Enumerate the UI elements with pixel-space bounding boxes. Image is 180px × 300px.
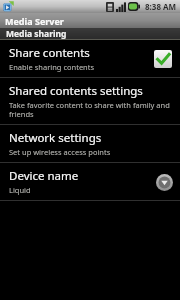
button[interactable]: Share contents toggle — [152, 48, 174, 70]
staticText: Media Server — [5, 15, 64, 27]
button[interactable]: Change device name — [154, 172, 174, 192]
button[interactable]: Share contents — [0, 40, 180, 77]
staticText: Shared contents settings — [9, 83, 143, 99]
staticText: Network settings — [9, 130, 102, 146]
staticText: Liquid — [9, 185, 31, 195]
staticText: Set up wireless access points — [9, 147, 111, 157]
staticText: Take favorite content to share with fami… — [9, 100, 174, 119]
button[interactable]: Shared contents settings — [0, 78, 180, 124]
staticText: Share contents — [9, 45, 90, 61]
staticText: Enable sharing contents — [9, 62, 95, 72]
staticText: Media sharing — [6, 28, 67, 39]
button[interactable]: Device name — [0, 163, 180, 200]
staticText: 8:38 AM — [145, 1, 177, 12]
button[interactable]: Network settings — [0, 125, 180, 162]
staticText: Device name — [9, 168, 79, 184]
